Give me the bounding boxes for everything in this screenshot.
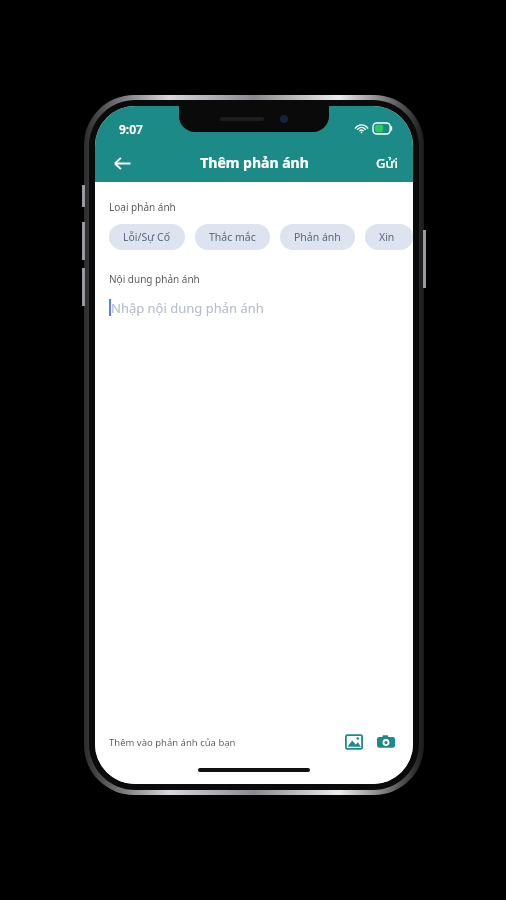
staticText: Thêm vào phản ánh của bạn	[109, 736, 236, 749]
button[interactable]: Nhập nội dung phản ánh	[95, 298, 413, 316]
staticText: Gửi	[376, 154, 399, 172]
staticText: Xin nghỉ	[379, 230, 399, 244]
staticText: Thêm phản ánh	[200, 153, 309, 172]
button[interactable]: Back	[103, 144, 141, 182]
staticText: 9:07	[119, 121, 143, 137]
button[interactable]: Xin nghỉ	[365, 224, 413, 250]
staticText: Lỗi/Sự Cố	[123, 230, 171, 244]
button[interactable]: Gửi	[362, 146, 413, 180]
staticText: Phản ánh	[294, 230, 341, 244]
staticText: Thắc mắc	[209, 230, 256, 244]
button[interactable]: Phản ánh	[280, 224, 355, 250]
button[interactable]: Thắc mắc	[195, 224, 270, 250]
staticText: Nhập nội dung phản ánh	[111, 299, 264, 317]
staticText: Nội dung phản ánh	[109, 272, 200, 286]
staticText: Loại phản ánh	[109, 200, 176, 214]
button[interactable]: Take photo	[373, 729, 399, 755]
button[interactable]: Add image	[341, 729, 367, 755]
button[interactable]: Lỗi/Sự Cố	[109, 224, 185, 250]
